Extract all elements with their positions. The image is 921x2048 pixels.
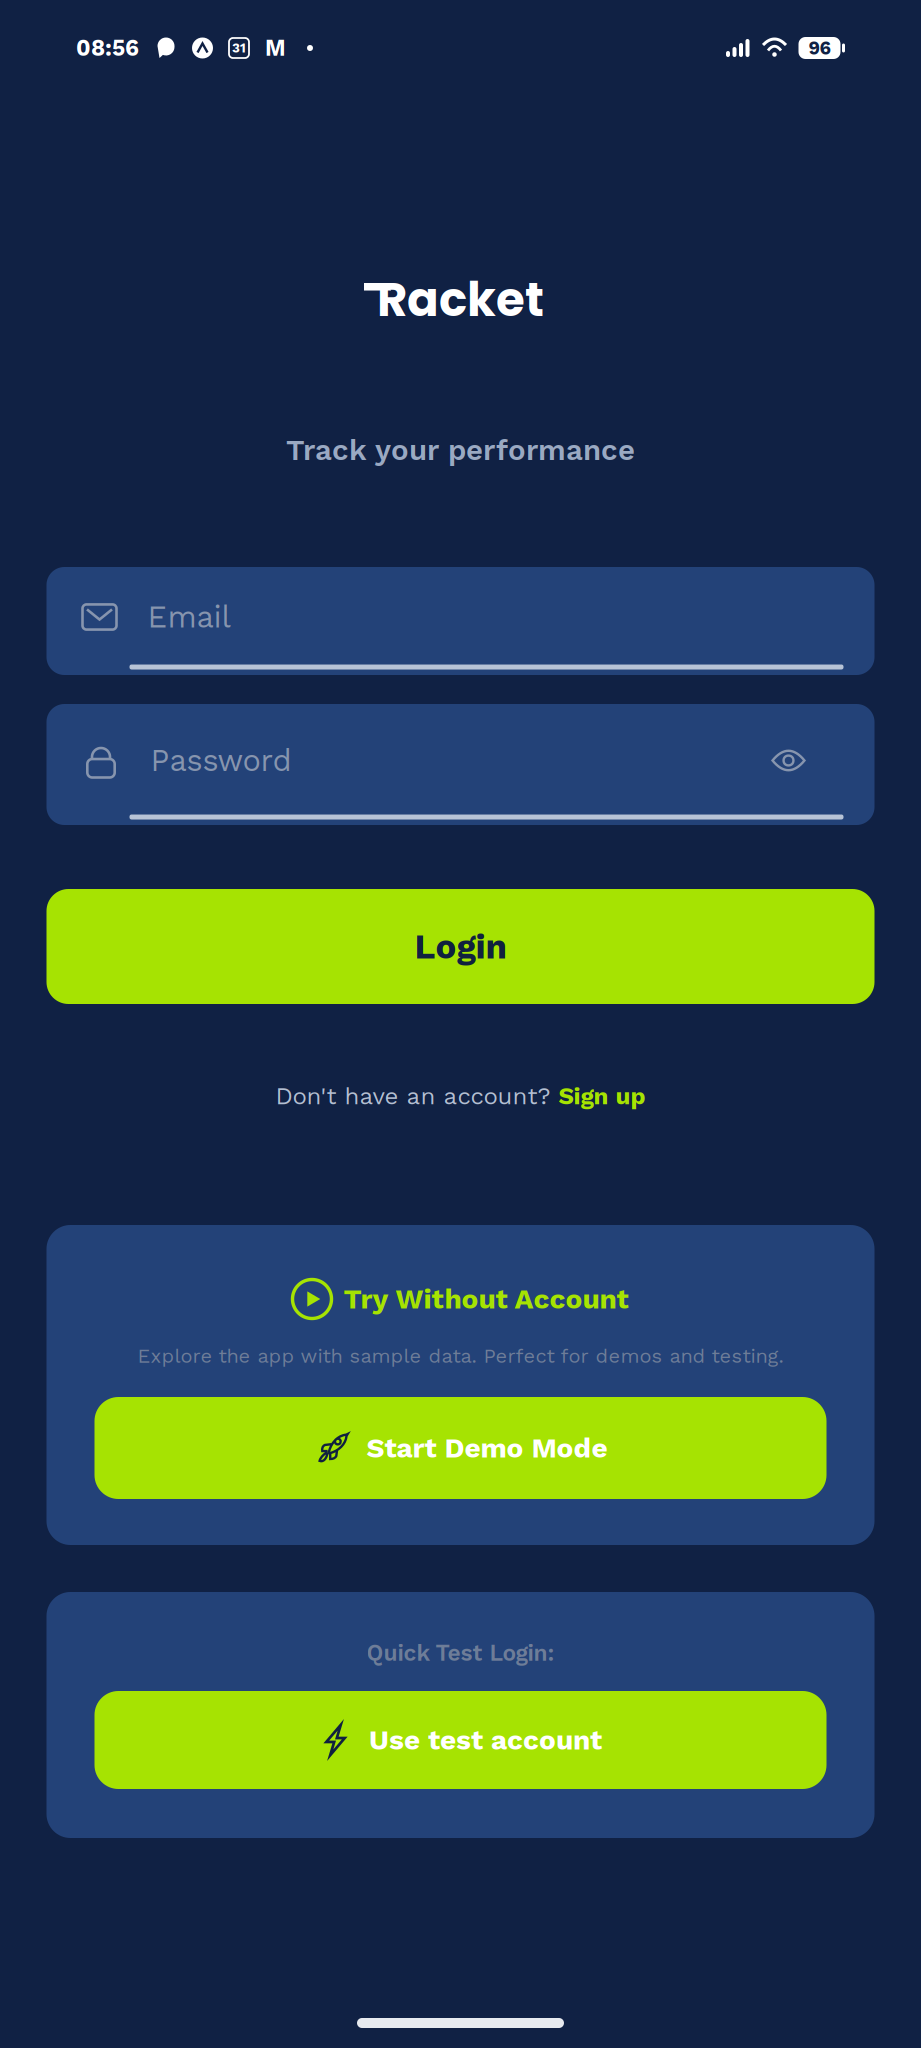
button[interactable]: Start Demo Mode: [94, 1397, 826, 1499]
button[interactable]: Show password: [760, 732, 816, 788]
staticText: Explore the app with sample data. Perfec…: [137, 1344, 783, 1368]
button[interactable]: Login: [46, 889, 874, 1004]
staticText: Password: [150, 742, 291, 778]
staticText: Sign up: [558, 1082, 645, 1110]
staticText: Start Demo Mode: [366, 1432, 607, 1464]
button[interactable]: Don't have an account?: [275, 1074, 645, 1118]
staticText: Don't have an account?: [275, 1082, 558, 1110]
staticText: Racket: [377, 267, 544, 332]
staticText: Quick Test Login:: [366, 1640, 554, 1666]
button[interactable]: Use test account: [94, 1691, 826, 1789]
staticText: Email: [147, 599, 230, 635]
staticText: Login: [414, 926, 506, 967]
staticText: Use test account: [369, 1724, 602, 1756]
staticText: Track your performance: [286, 433, 635, 467]
staticText: 08:56: [76, 35, 139, 61]
staticText: Try Without Account: [343, 1283, 628, 1315]
staticText: 31: [232, 40, 246, 56]
staticText: M: [265, 35, 286, 61]
staticText: 96: [808, 37, 830, 59]
